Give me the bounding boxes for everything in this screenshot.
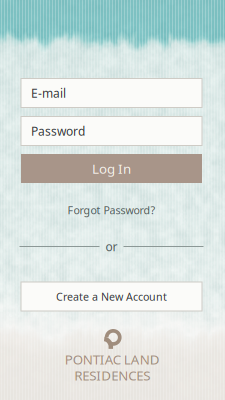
button[interactable]: Create a New Account: [21, 282, 202, 311]
button[interactable]: Password: [21, 116, 202, 145]
button[interactable]: Log In: [21, 154, 202, 183]
staticText: RESIDENCES: [74, 366, 150, 384]
button[interactable]: Forgot Password?: [21, 202, 202, 218]
staticText: or: [105, 238, 117, 254]
staticText: PONTIAC LAND: [65, 350, 160, 368]
button[interactable]: E-mail: [21, 78, 202, 107]
staticText: Forgot Password?: [67, 203, 155, 217]
staticText: E-mail: [31, 85, 66, 101]
staticText: Create a New Account: [56, 289, 167, 304]
staticText: Password: [31, 123, 85, 139]
staticText: Log In: [92, 160, 131, 177]
